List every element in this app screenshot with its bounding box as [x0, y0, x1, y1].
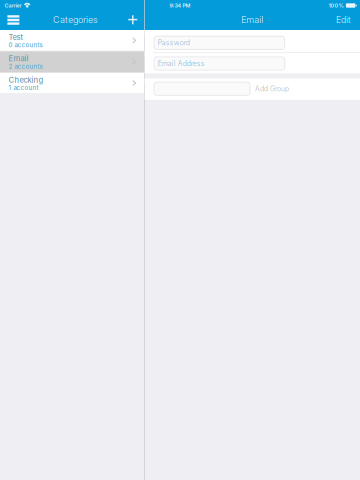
staticText: Carrier [5, 2, 22, 9]
staticText: 9:34 PM [169, 2, 190, 9]
staticText: Add Group [255, 84, 289, 93]
staticText: Test [9, 33, 24, 42]
staticText: 1 account [9, 84, 39, 91]
button[interactable]: Checking [0, 73, 144, 94]
button[interactable]: Show sidebar [2, 10, 25, 29]
staticText: Categories [53, 14, 98, 25]
button[interactable]: Test [0, 30, 144, 51]
staticText: Email [9, 54, 29, 63]
staticText: 2 accounts [9, 63, 43, 70]
staticText: Password [158, 39, 190, 47]
button[interactable] [154, 82, 250, 95]
staticText: Email [241, 14, 263, 25]
button[interactable]: Email Address [154, 57, 285, 70]
button[interactable]: Edit [336, 10, 351, 29]
staticText: 100% [328, 2, 343, 9]
button[interactable]: Add category [122, 10, 144, 29]
staticText: Checking [9, 75, 44, 84]
staticText: 0 accounts [9, 41, 43, 49]
staticText: Edit [336, 15, 351, 25]
staticText: Email Address [158, 59, 205, 68]
button[interactable]: Email [0, 51, 144, 73]
button[interactable]: Password [154, 36, 285, 49]
